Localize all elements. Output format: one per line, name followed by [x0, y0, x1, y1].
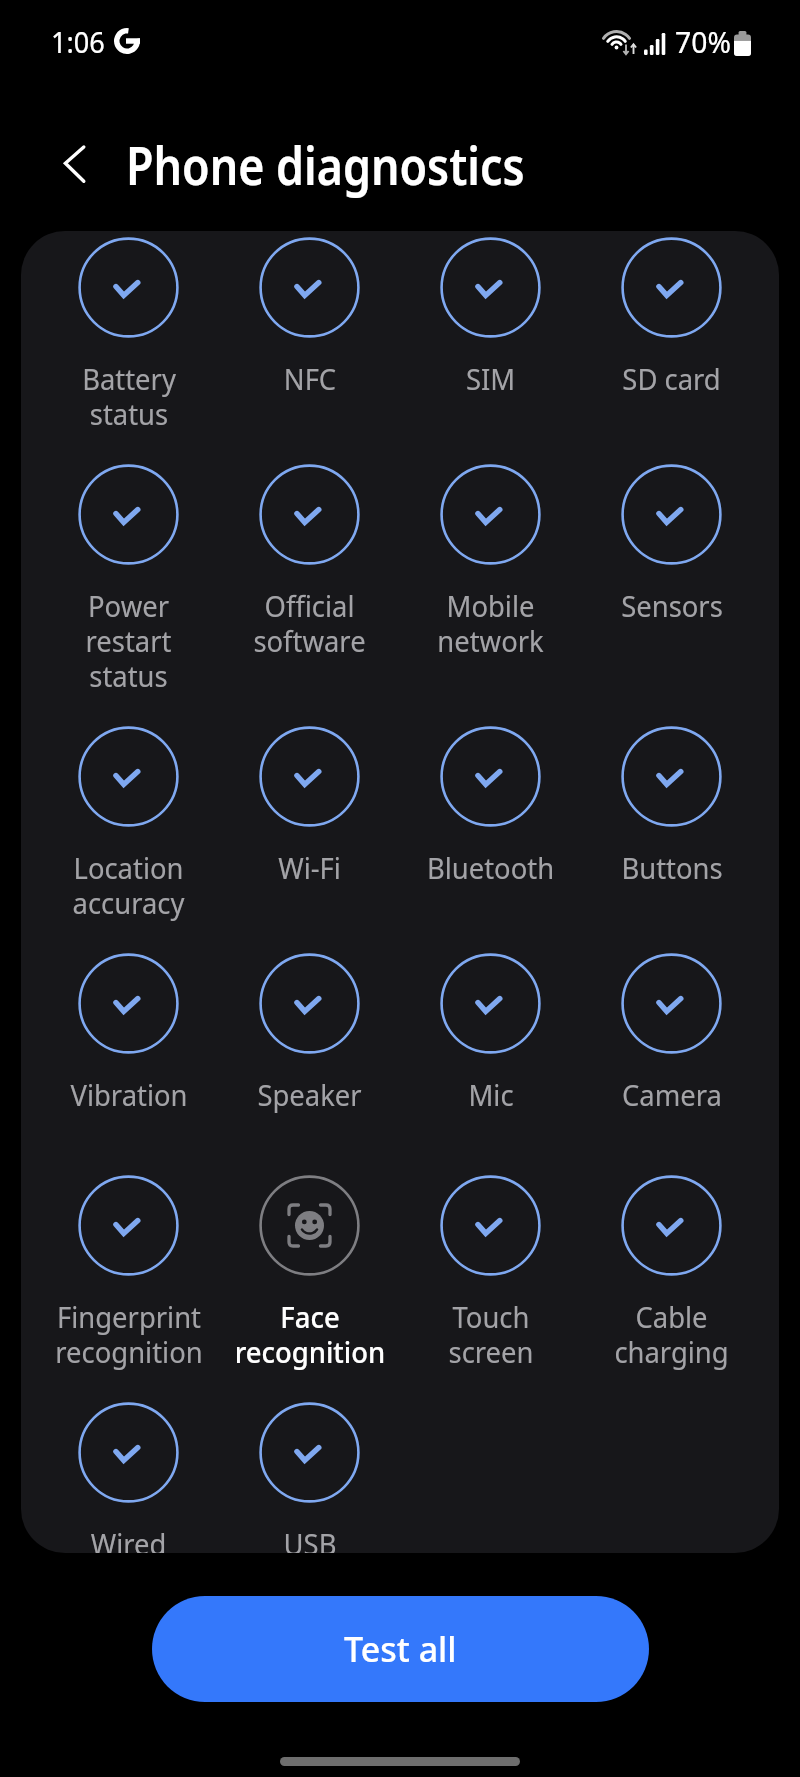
button[interactable]: SD card — [581, 237, 762, 464]
button[interactable]: Wired — [38, 1402, 219, 1553]
button[interactable]: Test all — [152, 1596, 649, 1702]
staticText: SD card — [622, 359, 721, 398]
staticText: Battery status — [82, 359, 176, 434]
staticText: 1:06 — [51, 21, 105, 61]
staticText: Location accuracy — [72, 848, 185, 923]
staticText: Cable charging — [614, 1297, 729, 1372]
button[interactable]: Mic — [400, 953, 581, 1175]
staticText: Speaker — [257, 1075, 362, 1114]
staticText: Mobile network — [437, 586, 544, 661]
button[interactable]: NFC — [219, 237, 400, 464]
button[interactable]: Camera — [581, 953, 762, 1175]
staticText: Fingerprint recognition — [55, 1297, 203, 1372]
button[interactable]: Cable charging — [581, 1175, 762, 1402]
button[interactable]: SIM — [400, 237, 581, 464]
button[interactable]: Sensors — [581, 464, 762, 726]
staticText: Face recognition — [234, 1297, 386, 1372]
button[interactable]: Wi-Fi — [219, 726, 400, 953]
button[interactable]: Fingerprint recognition — [38, 1175, 219, 1402]
button[interactable]: Back — [62, 144, 106, 188]
staticText: Bluetooth — [427, 848, 554, 887]
button[interactable]: Mobile network — [400, 464, 581, 726]
button[interactable]: Buttons — [581, 726, 762, 953]
button[interactable]: Official software — [219, 464, 400, 726]
staticText: Buttons — [621, 848, 723, 887]
staticText: Wi-Fi — [278, 848, 341, 887]
button[interactable]: Bluetooth — [400, 726, 581, 953]
staticText: SIM — [465, 359, 516, 398]
staticText: Mic — [468, 1075, 514, 1114]
staticText: 70% — [675, 22, 732, 61]
button[interactable]: USB — [219, 1402, 400, 1553]
button[interactable]: Battery status — [38, 237, 219, 464]
button[interactable]: Vibration — [38, 953, 219, 1175]
staticText: Vibration — [70, 1075, 188, 1114]
staticText: Test all — [344, 1626, 457, 1672]
button[interactable]: Touch screen — [400, 1175, 581, 1402]
staticText: Power restart status — [85, 586, 171, 696]
staticText: Phone diagnostics — [126, 130, 525, 200]
button[interactable]: Face recognition — [219, 1175, 400, 1402]
button[interactable]: Power restart status — [38, 464, 219, 726]
staticText: Wired — [90, 1524, 167, 1553]
button[interactable]: Location accuracy — [38, 726, 219, 953]
staticText: Sensors — [621, 586, 723, 625]
staticText: Official software — [253, 586, 366, 661]
staticText: USB — [283, 1524, 336, 1553]
staticText: NFC — [283, 359, 336, 398]
staticText: Touch screen — [448, 1297, 534, 1372]
staticText: Camera — [622, 1075, 722, 1114]
button[interactable]: Speaker — [219, 953, 400, 1175]
